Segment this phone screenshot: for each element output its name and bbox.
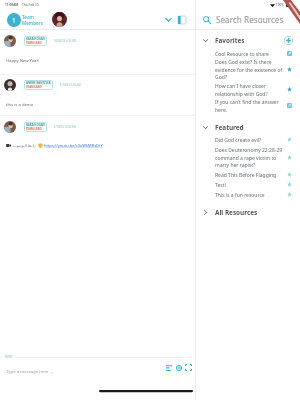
- staticText: https://youtu.be/c3xWkMRsDtY: [44, 143, 103, 148]
- staticText: رابط اليوتيوب: [13, 143, 36, 148]
- staticText: ANDRE BANTZLER: [26, 81, 51, 85]
- staticText: How can I have closer relationship with …: [215, 83, 284, 97]
- staticText: 1: [12, 16, 16, 25]
- button[interactable]: If you can't find the answer here.: [196, 99, 300, 114]
- button[interactable]: Emoji: [174, 363, 183, 372]
- button[interactable]: Search: [201, 10, 300, 29]
- staticText: Did God create evil?: [215, 137, 262, 144]
- staticText: All Resources: [215, 208, 258, 217]
- button[interactable]: Add favorite: [283, 35, 294, 46]
- staticText: 1/13/23 5:16 AM: [60, 83, 81, 87]
- button[interactable]: Featured: [196, 121, 300, 133]
- staticText: Favorites: [215, 36, 245, 45]
- staticText: KARA HOGAN: [26, 123, 45, 127]
- staticText: Thu Feb 10: [22, 3, 39, 7]
- button[interactable]: Favorites: [196, 34, 300, 46]
- button[interactable]: Formatting: [164, 363, 173, 372]
- staticText: If you can't find the answer here.: [215, 99, 284, 113]
- button[interactable]: Team: [22, 14, 43, 26]
- staticText: TEAM LEAD: [26, 85, 42, 89]
- button[interactable]: Type a message here ...: [6, 368, 165, 374]
- staticText: Happy New Year!: [6, 58, 40, 64]
- staticText: 11:08AM: [5, 3, 19, 7]
- staticText: This is a fun resource: [215, 192, 265, 199]
- button[interactable]: Read This Before Flagging: [196, 170, 300, 181]
- button[interactable]: How can I have closer relationship with …: [196, 83, 300, 98]
- staticText: 1/14/23 12:30 PM: [54, 125, 77, 129]
- button[interactable]: 1: [7, 13, 21, 27]
- staticText: NOW: [5, 355, 13, 359]
- button[interactable]: KARA HOGAN: [24, 122, 47, 132]
- staticText: Type a message here ...: [6, 368, 54, 374]
- button[interactable]: Toggle side panel: [175, 13, 188, 26]
- button[interactable]: Expand members: [162, 13, 175, 26]
- button[interactable]: Does Deuteronomy 22:28-29 command a rape…: [196, 147, 300, 169]
- staticText: Team: [22, 14, 34, 20]
- staticText: Featured: [215, 123, 244, 132]
- staticText: Cool Resource to share: [215, 51, 269, 58]
- button[interactable]: Test!: [196, 180, 300, 191]
- staticText: this is a demo: [6, 102, 34, 108]
- staticText: TEAM LEAD: [26, 127, 42, 131]
- button[interactable]: Expand composer: [184, 363, 193, 372]
- staticText: Read This Before Flagging: [215, 172, 277, 179]
- staticText: Does Deuteronomy 22:28-29 command a rape…: [215, 147, 284, 168]
- button[interactable]: All Resources: [196, 206, 300, 218]
- staticText: Members: [22, 20, 43, 26]
- button[interactable]: KARA HOGAN: [24, 36, 47, 46]
- staticText: Search Resources: [216, 14, 284, 25]
- staticText: Test!: [215, 182, 226, 189]
- button[interactable]: Cool Resource to share: [196, 49, 300, 60]
- button[interactable]: Does God exist? Is there evidence for th…: [196, 59, 300, 81]
- staticText: KARA HOGAN: [26, 37, 45, 41]
- button[interactable]: Did God create evil?: [196, 135, 300, 146]
- staticText: TEAM LEAD: [26, 41, 42, 45]
- other: Search: [201, 14, 213, 26]
- staticText: Does God exist? Is there evidence for th…: [215, 59, 284, 80]
- staticText: 100%: [276, 3, 284, 7]
- button[interactable]: This is a fun resource: [196, 190, 300, 201]
- staticText: 10/24/22 1:30 PM: [54, 39, 77, 43]
- button[interactable]: ANDRE BANTZLER: [24, 80, 53, 90]
